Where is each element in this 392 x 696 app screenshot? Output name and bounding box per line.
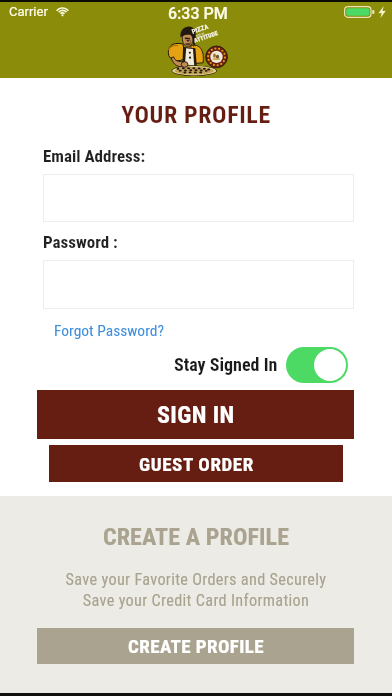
staticText: with an [195, 31, 205, 38]
button[interactable]: Stay Signed In toggle [286, 347, 348, 383]
staticText: Carrier [9, 4, 48, 19]
button[interactable]: GUEST ORDER [49, 445, 343, 482]
staticText: Save your Credit Card Information [0, 591, 392, 610]
staticText: Password : [43, 232, 118, 252]
staticText: YOUR PROFILE [0, 101, 392, 129]
button[interactable]: CREATE PROFILE [37, 628, 354, 664]
staticText: GUEST ORDER [139, 453, 254, 475]
staticText: ATTITUDE [193, 29, 219, 44]
staticText: CREATE A PROFILE [0, 523, 392, 551]
button[interactable]: SIGN IN [37, 390, 354, 439]
staticText: Stay Signed In [174, 354, 278, 375]
staticText: 6:33 PM [168, 4, 228, 23]
staticText: Forgot Password? [54, 322, 164, 340]
staticText: SIGN IN [157, 401, 235, 429]
staticText: Save your Favorite Orders and Securely [0, 570, 392, 589]
staticText: PIZZA [191, 22, 210, 36]
button[interactable]: Forgot Password? [54, 322, 164, 340]
staticText: Email Address: [43, 146, 146, 166]
staticText: CREATE PROFILE [128, 635, 264, 657]
